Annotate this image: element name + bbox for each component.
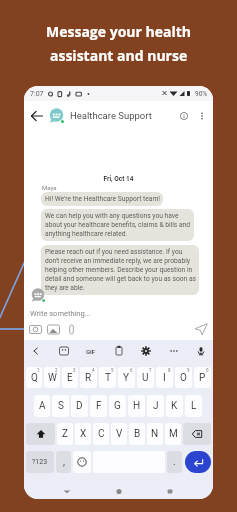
button[interactable]: N [147, 423, 163, 445]
button[interactable]: O [175, 367, 192, 388]
staticText: 6 [130, 368, 133, 373]
button[interactable]: Voice input [195, 345, 207, 357]
button[interactable]: R [80, 367, 97, 388]
staticText: 7:07 [30, 90, 44, 98]
button[interactable]: E [62, 367, 78, 388]
button[interactable]: U [137, 367, 154, 388]
button[interactable]: Clipboard [113, 345, 125, 357]
staticText: 8 [168, 368, 171, 373]
staticText: Z [62, 428, 68, 440]
staticText: H [133, 400, 141, 412]
button[interactable]: Camera [29, 323, 42, 336]
staticText: R [85, 372, 92, 384]
button[interactable] [26, 423, 55, 445]
button[interactable]: . [167, 451, 182, 473]
staticText: B [134, 428, 141, 440]
button[interactable]: Y [118, 367, 135, 388]
button[interactable]: B [129, 423, 145, 445]
button[interactable]: T [99, 367, 116, 388]
button[interactable]: Info [176, 108, 192, 124]
button[interactable]: M [165, 423, 181, 445]
staticText: 3 [73, 368, 76, 373]
staticText: Message your health [46, 22, 191, 41]
staticText: V [116, 428, 123, 440]
staticText: W [48, 372, 57, 384]
staticText: We can help you with any questions you h… [45, 212, 191, 238]
button[interactable]: J [147, 395, 164, 417]
staticText: Fri, Oct 14 [24, 175, 213, 183]
staticText: T [105, 372, 111, 384]
staticText: 90% [195, 90, 208, 98]
staticText: Y [123, 372, 130, 384]
button[interactable]: ?123 [26, 451, 54, 473]
button[interactable]: Back [30, 345, 42, 357]
button[interactable]: Q [26, 367, 42, 388]
button[interactable]: Z [57, 423, 73, 445]
button[interactable]: GIF [85, 345, 97, 358]
button[interactable]: D [71, 395, 88, 417]
button[interactable]: L [185, 395, 202, 417]
staticText: 5 [111, 368, 114, 373]
staticText: O [180, 372, 187, 384]
button[interactable]: H [128, 395, 145, 417]
button[interactable]: K [166, 395, 183, 417]
button[interactable]: Send [194, 322, 208, 336]
button[interactable]: C [93, 423, 109, 445]
button[interactable]: Back [28, 107, 46, 125]
staticText: A [39, 400, 46, 412]
button[interactable]: F [90, 395, 107, 417]
staticText: Healthcare Support [70, 110, 152, 121]
staticText: U [142, 372, 149, 384]
staticText: 2 [55, 368, 58, 373]
button[interactable]: More options [195, 109, 209, 123]
button[interactable]: More [168, 345, 180, 357]
staticText: K [171, 400, 178, 412]
button[interactable] [183, 423, 211, 445]
button[interactable]: P [194, 367, 211, 388]
staticText: assistant and nurse [50, 46, 188, 65]
button[interactable] [73, 451, 91, 473]
staticText: D [76, 400, 83, 412]
staticText: Write something... [30, 309, 91, 318]
staticText: , [63, 456, 65, 468]
button[interactable]: X [75, 423, 91, 445]
button[interactable]: I [156, 367, 173, 388]
staticText: Maya [42, 184, 57, 191]
button[interactable]: G [109, 395, 126, 417]
button[interactable]: W [44, 367, 60, 388]
button[interactable]: A [34, 395, 50, 417]
staticText: N [151, 428, 159, 440]
staticText: . [173, 456, 176, 468]
staticText: I [163, 372, 166, 384]
staticText: M [169, 428, 178, 440]
staticText: E [67, 372, 73, 384]
staticText: 0 [206, 368, 209, 373]
staticText: F [96, 400, 102, 412]
staticText: Q [31, 372, 38, 384]
staticText: L [191, 400, 197, 412]
button[interactable]: Recents [162, 485, 178, 498]
staticText: Hi! We're the Healthcare Support team! [45, 195, 160, 203]
staticText: ?123 [32, 458, 48, 466]
staticText: J [153, 400, 159, 412]
button[interactable]: Enter [185, 451, 211, 473]
staticText: S [58, 400, 64, 412]
button[interactable]: , [56, 451, 71, 473]
staticText: 4 [92, 368, 95, 373]
button[interactable]: V [111, 423, 127, 445]
button[interactable]: Settings [140, 345, 152, 357]
staticText: GIF [86, 348, 96, 355]
button[interactable]: S [52, 395, 69, 417]
staticText: 7 [149, 368, 152, 373]
staticText: G [114, 400, 121, 412]
button[interactable]: Home [111, 485, 127, 498]
staticText: 1 [37, 368, 40, 373]
button[interactable]: Gallery [47, 323, 60, 336]
button[interactable]: Back [59, 485, 75, 498]
staticText: X [80, 428, 87, 440]
button[interactable]: Stickers [58, 345, 70, 357]
staticText: 9 [187, 368, 190, 373]
staticText: C [98, 428, 105, 440]
button[interactable]: Attach [65, 323, 78, 336]
